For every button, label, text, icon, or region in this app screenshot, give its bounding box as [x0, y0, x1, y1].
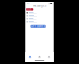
button[interactable]: Get started	[31, 25, 46, 28]
button[interactable]	[26, 18, 52, 20]
staticText: 9:41	[27, 3, 30, 4]
button[interactable]: Reminder	[26, 8, 33, 11]
button[interactable]: Search	[35, 54, 44, 60]
button[interactable]	[26, 21, 52, 23]
button[interactable]	[26, 15, 52, 17]
staticText: Messages	[33, 4, 46, 7]
staticText: Get started	[31, 24, 46, 28]
button[interactable]: Chats	[25, 54, 35, 60]
button[interactable]: Settings	[44, 54, 54, 60]
button[interactable]	[26, 12, 52, 14]
staticText: Reminder	[26, 4, 33, 15]
